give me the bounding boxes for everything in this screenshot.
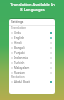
button[interactable]: English xyxy=(9,35,55,40)
staticText: Russian xyxy=(14,71,25,75)
staticText: Abdul Basit xyxy=(14,80,30,84)
staticText: Settings xyxy=(11,20,24,24)
button[interactable]: Bangali xyxy=(9,45,55,50)
staticText: Punjabi xyxy=(14,51,25,55)
staticText: Translation Available In xyxy=(10,2,55,7)
staticText: Malayalam xyxy=(14,66,30,70)
button[interactable]: Punjabi xyxy=(9,50,55,55)
staticText: Indonesia xyxy=(14,56,28,60)
staticText: Urdu xyxy=(14,31,22,35)
button[interactable]: Indonesia xyxy=(9,55,55,60)
staticText: Hindi xyxy=(14,41,22,45)
staticText: English xyxy=(14,36,25,40)
staticText: Bangali xyxy=(14,46,25,50)
button[interactable]: Russian xyxy=(9,70,55,75)
staticText: Recitation xyxy=(11,75,25,79)
staticText: 8 Languages xyxy=(20,7,45,12)
button[interactable]: Turkish xyxy=(9,60,55,65)
button[interactable]: Abdul Basit xyxy=(9,79,55,84)
staticText: Translation xyxy=(11,26,27,30)
button[interactable]: Malayalam xyxy=(9,65,55,70)
button[interactable]: Urdu xyxy=(9,30,55,35)
staticText: Turkish xyxy=(14,61,25,65)
button[interactable]: Settings xyxy=(9,19,55,25)
button[interactable]: Hindi xyxy=(9,40,55,45)
